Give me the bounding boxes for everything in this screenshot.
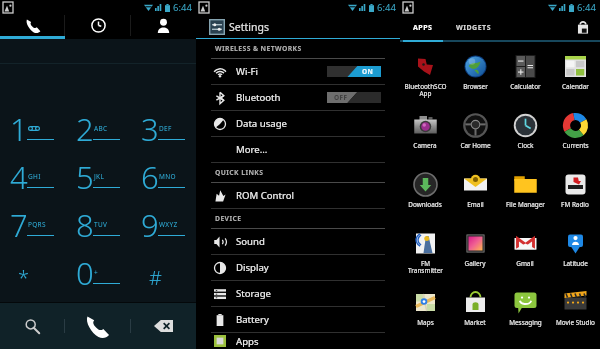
staticText: 8 [76,204,94,246]
staticText: Bluetooth [236,91,281,104]
staticText: Wi-Fi [236,65,258,78]
button[interactable]: 4 [0,153,66,201]
button[interactable]: 3 [131,105,196,153]
staticText: Display [236,261,269,274]
button[interactable]: Messaging [500,288,550,347]
button[interactable]: Storage [196,281,400,307]
button[interactable]: 8 [66,201,131,249]
button[interactable]: Camera [400,111,450,170]
button[interactable]: Display [196,255,400,281]
staticText: MNO [159,172,176,181]
staticText: File Manager [506,200,545,209]
staticText: Car Home [460,141,491,150]
button[interactable]: Gmail [500,229,550,288]
button[interactable]: WIDGETS [446,15,500,40]
button[interactable]: Latitude [550,229,600,288]
staticText: Gallery [464,259,486,268]
button[interactable]: Email [450,170,500,229]
button[interactable]: # [131,249,196,297]
button[interactable]: Wi-Fi [196,59,400,85]
staticText: 6:44 [173,1,192,14]
button[interactable]: More… [196,137,400,163]
button[interactable]: ROM Control [196,183,400,209]
button[interactable]: Downloads [400,170,450,229]
button[interactable]: Dialpad [0,15,66,36]
staticText: 7 [10,204,28,246]
button[interactable]: Currents [550,111,600,170]
button[interactable]: 2 [66,105,131,153]
button[interactable]: Play Store [570,15,596,40]
button[interactable]: * [0,249,66,297]
staticText: Apps [236,335,259,348]
button[interactable]: APPS [400,15,446,40]
staticText: 6 [141,156,159,198]
staticText: + [94,268,99,277]
staticText: Email [467,200,484,209]
button[interactable]: 0 [66,249,131,297]
staticText: ON [362,67,374,76]
button[interactable]: Call [65,303,130,349]
button[interactable]: FM Radio [550,170,600,229]
staticText: APPS [413,23,433,33]
button[interactable]: Calendar [550,52,600,111]
staticText: Maps [417,318,434,327]
staticText: # [149,264,162,291]
staticText: Calculator [510,82,541,91]
button[interactable]: Data usage [196,111,400,137]
staticText: Camera [413,141,437,150]
button[interactable]: 1 [0,105,66,153]
staticText: Calendar [562,82,589,91]
staticText: 0 [76,252,94,294]
staticText: ABC [94,124,108,133]
button[interactable]: Car Home [450,111,500,170]
staticText: Market [464,318,486,327]
staticText: 9 [141,204,159,246]
staticText: WXYZ [159,220,178,229]
staticText: DEF [159,124,172,133]
button[interactable]: FM Transmitter [400,229,450,288]
staticText: JKL [94,172,105,181]
staticText: WIDGETS [456,23,491,33]
button[interactable]: Gallery [450,229,500,288]
button[interactable]: BluetoothSCO App [400,52,450,111]
button[interactable]: Call log [66,15,131,36]
staticText: DEVICE [215,214,242,223]
button[interactable]: Movie Studio [550,288,600,347]
button[interactable]: 5 [66,153,131,201]
staticText: Clock [517,141,534,150]
button[interactable]: Bluetooth [196,85,400,111]
staticText: 5 [76,156,94,198]
staticText: 6:44 [577,1,596,14]
staticText: 4 [10,156,28,198]
button[interactable]: 7 [0,201,66,249]
button[interactable]: 6 [131,153,196,201]
button[interactable]: Calculator [500,52,550,111]
staticText: 1 [10,108,28,150]
staticText: 6:44 [377,1,396,14]
button[interactable]: Maps [400,288,450,347]
button[interactable]: Sound [196,229,400,255]
staticText: FM Radio [561,200,589,209]
button[interactable]: File Manager [500,170,550,229]
staticText: Battery [236,313,269,326]
button[interactable]: Apps [196,333,400,349]
staticText: Messaging [509,318,542,327]
button[interactable]: Contacts [131,15,196,36]
button[interactable]: 9 [131,201,196,249]
staticText: Latitude [563,259,588,268]
staticText: Gmail [516,259,534,268]
staticText: Storage [236,287,271,300]
button[interactable]: OFF [327,92,381,103]
staticText: GHI [28,172,41,181]
staticText: Browser [463,82,488,91]
button[interactable]: Battery [196,307,400,333]
button[interactable]: Browser [450,52,500,111]
staticText: Settings [229,20,269,34]
button[interactable]: Delete [131,303,196,349]
button[interactable]: Clock [500,111,550,170]
button[interactable]: ON [327,66,381,77]
staticText: OFF [334,93,348,102]
button[interactable]: Market [450,288,500,347]
button[interactable]: Search [0,303,64,349]
staticText: Downloads [408,200,442,209]
